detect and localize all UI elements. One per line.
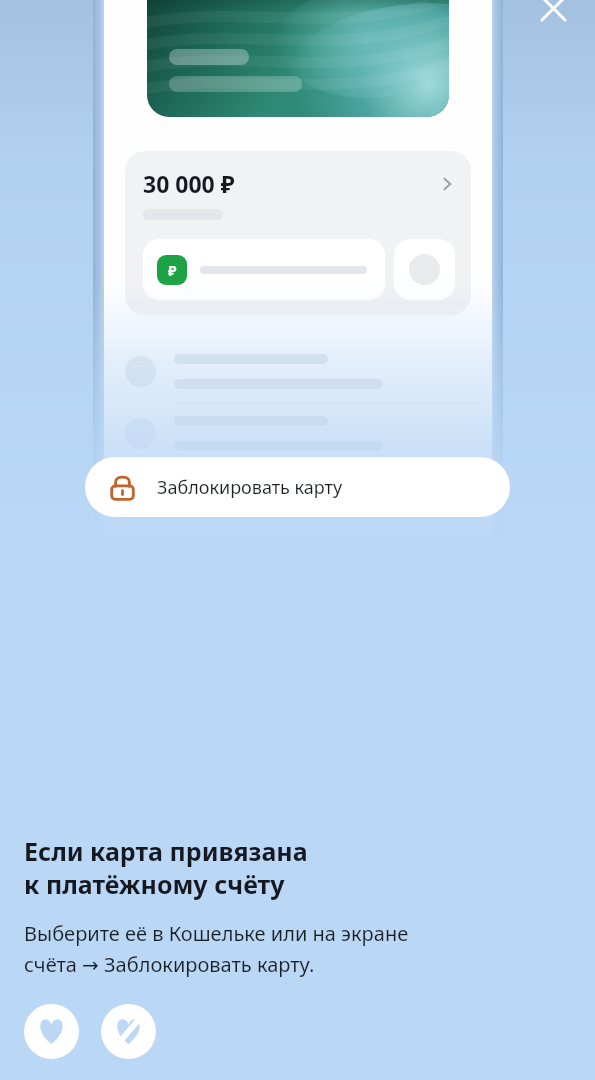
button[interactable] — [104, 403, 492, 464]
other: Lock card — [109, 474, 136, 501]
button[interactable]: Helpful — [24, 1004, 79, 1059]
button[interactable] — [104, 341, 492, 402]
other: Open account — [439, 176, 455, 192]
button[interactable] — [147, 0, 449, 117]
staticText: Выберите её в Кошельке или на экране счё… — [24, 920, 409, 978]
button[interactable]: More actions — [394, 239, 455, 300]
button[interactable]: ₽ — [143, 239, 385, 300]
staticText: ₽ — [168, 261, 177, 280]
button[interactable]: Not helpful — [101, 1004, 156, 1059]
button[interactable] — [104, 465, 492, 526]
button[interactable]: Lock card — [85, 457, 510, 517]
button[interactable]: Close — [529, 0, 577, 32]
button[interactable]: 30 000 ₽ — [125, 151, 471, 315]
staticText: Если карта привязана к платёжному счёту — [24, 834, 308, 901]
staticText: Заблокировать карту — [157, 475, 343, 500]
staticText: 30 000 ₽ — [143, 168, 235, 199]
